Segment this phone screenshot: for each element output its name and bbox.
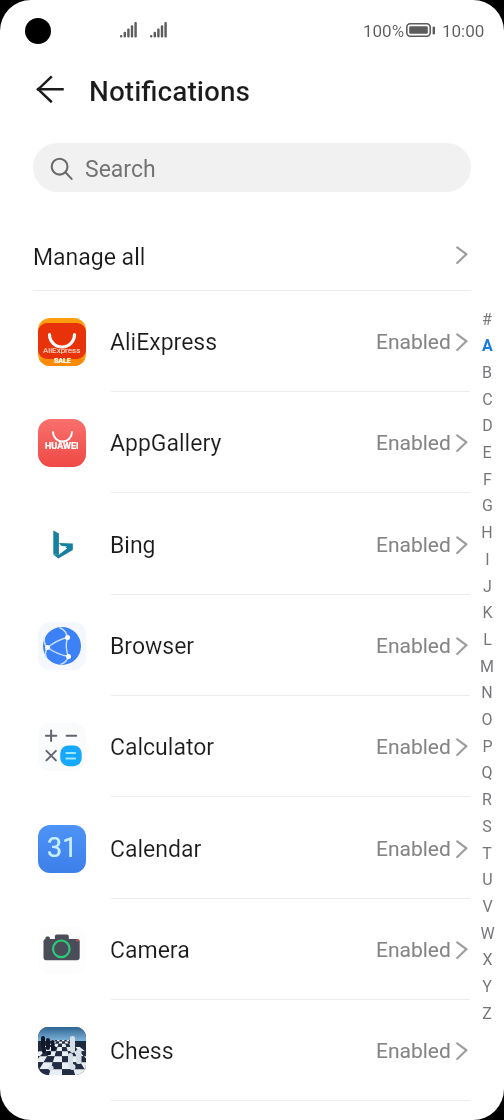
staticText: Enabled [376,837,451,862]
staticText: T [482,844,492,863]
staticText: J [483,577,492,596]
button[interactable]: HUAWEI [0,392,504,493]
staticText: W [480,924,495,943]
button[interactable]: AliExpress [0,291,504,392]
staticText: AppGallery [110,430,222,457]
staticText: Enabled [376,938,451,963]
staticText: Calendar [110,836,202,863]
staticText: Enabled [376,1039,451,1064]
staticText: 100% [363,21,405,41]
button[interactable]: Manage all [0,211,504,291]
staticText: AliExpress [110,329,218,356]
button[interactable]: Bing [0,494,504,595]
staticText: Q [481,763,493,782]
staticText: U [482,870,493,889]
staticText: Enabled [376,533,451,558]
staticText: Enabled [376,735,451,760]
staticText: L [483,630,492,649]
button[interactable]: Browser [0,595,504,696]
staticText: X [482,950,493,969]
staticText: K [482,603,493,622]
button[interactable]: Chess [0,1000,504,1101]
staticText: 31 [47,832,78,864]
staticText: N [481,683,493,702]
button[interactable]: Back [13,64,65,116]
staticText: Bing [110,532,156,559]
staticText: F [483,470,492,489]
staticText: Manage all [33,244,146,271]
staticText: S [482,817,492,836]
staticText: HUAWEI [45,441,79,452]
staticText: Enabled [376,634,451,659]
staticText: O [481,710,493,729]
staticText: SALE [54,357,71,365]
staticText: H [481,523,493,542]
staticText: Enabled [376,431,451,456]
staticText: 10:00 [442,21,485,41]
staticText: Chess [110,1038,174,1065]
staticText: A [482,336,493,355]
staticText: Calculator [110,734,215,761]
staticText: # [482,310,492,329]
staticText: E [482,443,492,462]
button[interactable]: Alphabet index [474,0,500,1120]
staticText: D [482,416,493,435]
staticText: C [482,390,493,409]
staticText: Browser [110,633,195,660]
staticText: I [485,550,490,569]
button[interactable]: Camera [0,899,504,1000]
staticText: AliExpress [43,346,81,355]
staticText: B [482,363,492,382]
staticText: Enabled [376,330,451,355]
button[interactable]: Calculator [0,696,504,797]
staticText: G [482,496,493,515]
button[interactable]: 31 [0,798,504,899]
staticText: P [482,737,493,756]
staticText: Camera [110,937,190,964]
button[interactable]: Search [33,143,471,192]
staticText: Z [482,1004,492,1023]
staticText: Notifications [89,75,250,108]
staticText: M [480,657,494,676]
staticText: Search [85,156,156,183]
staticText: R [482,790,492,809]
staticText: Y [482,977,492,996]
staticText: V [482,897,493,916]
